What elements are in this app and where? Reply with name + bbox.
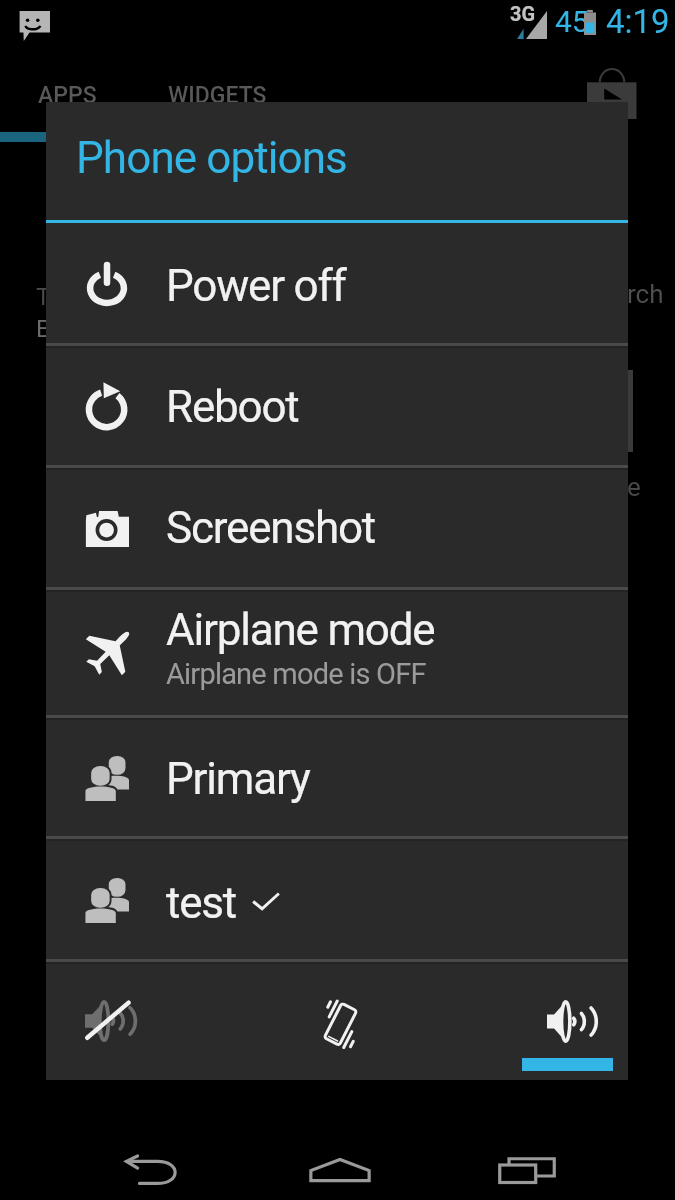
staticText: Screenshot	[166, 502, 376, 554]
staticText: test	[166, 877, 237, 929]
button[interactable]: Primary	[46, 720, 628, 836]
button[interactable]: Recent apps	[473, 1137, 581, 1200]
staticText: Power off	[166, 260, 346, 312]
staticText: Primary	[166, 753, 310, 805]
button[interactable]: Vibrate mode	[294, 964, 384, 1080]
staticText: WIDGETS	[168, 82, 267, 109]
staticText: e	[627, 472, 641, 502]
staticText: Phone options	[76, 132, 347, 184]
button[interactable]: Silent mode	[62, 964, 152, 1080]
staticText: Airplane mode is OFF	[166, 657, 426, 691]
button[interactable]: Power off	[46, 223, 628, 343]
staticText: 45	[555, 4, 589, 39]
staticText: rch	[627, 279, 664, 309]
staticText: Airplane mode	[166, 604, 435, 656]
staticText: 4:19	[606, 2, 670, 41]
button[interactable]: Back	[96, 1137, 204, 1200]
staticText: E	[36, 315, 50, 343]
button[interactable]: Messaging notification	[18, 11, 50, 41]
staticText: T	[36, 283, 51, 311]
staticText: Reboot	[166, 381, 299, 433]
staticText: APPS	[38, 82, 97, 109]
button[interactable]: Reboot	[46, 348, 628, 465]
button[interactable]: Airplane mode	[46, 592, 628, 715]
staticText: 3G	[510, 2, 536, 25]
button[interactable]: test	[46, 841, 628, 959]
button[interactable]: Home	[286, 1137, 394, 1200]
button[interactable]: Sound on	[502, 964, 638, 1080]
button[interactable]: Screenshot	[46, 470, 628, 587]
